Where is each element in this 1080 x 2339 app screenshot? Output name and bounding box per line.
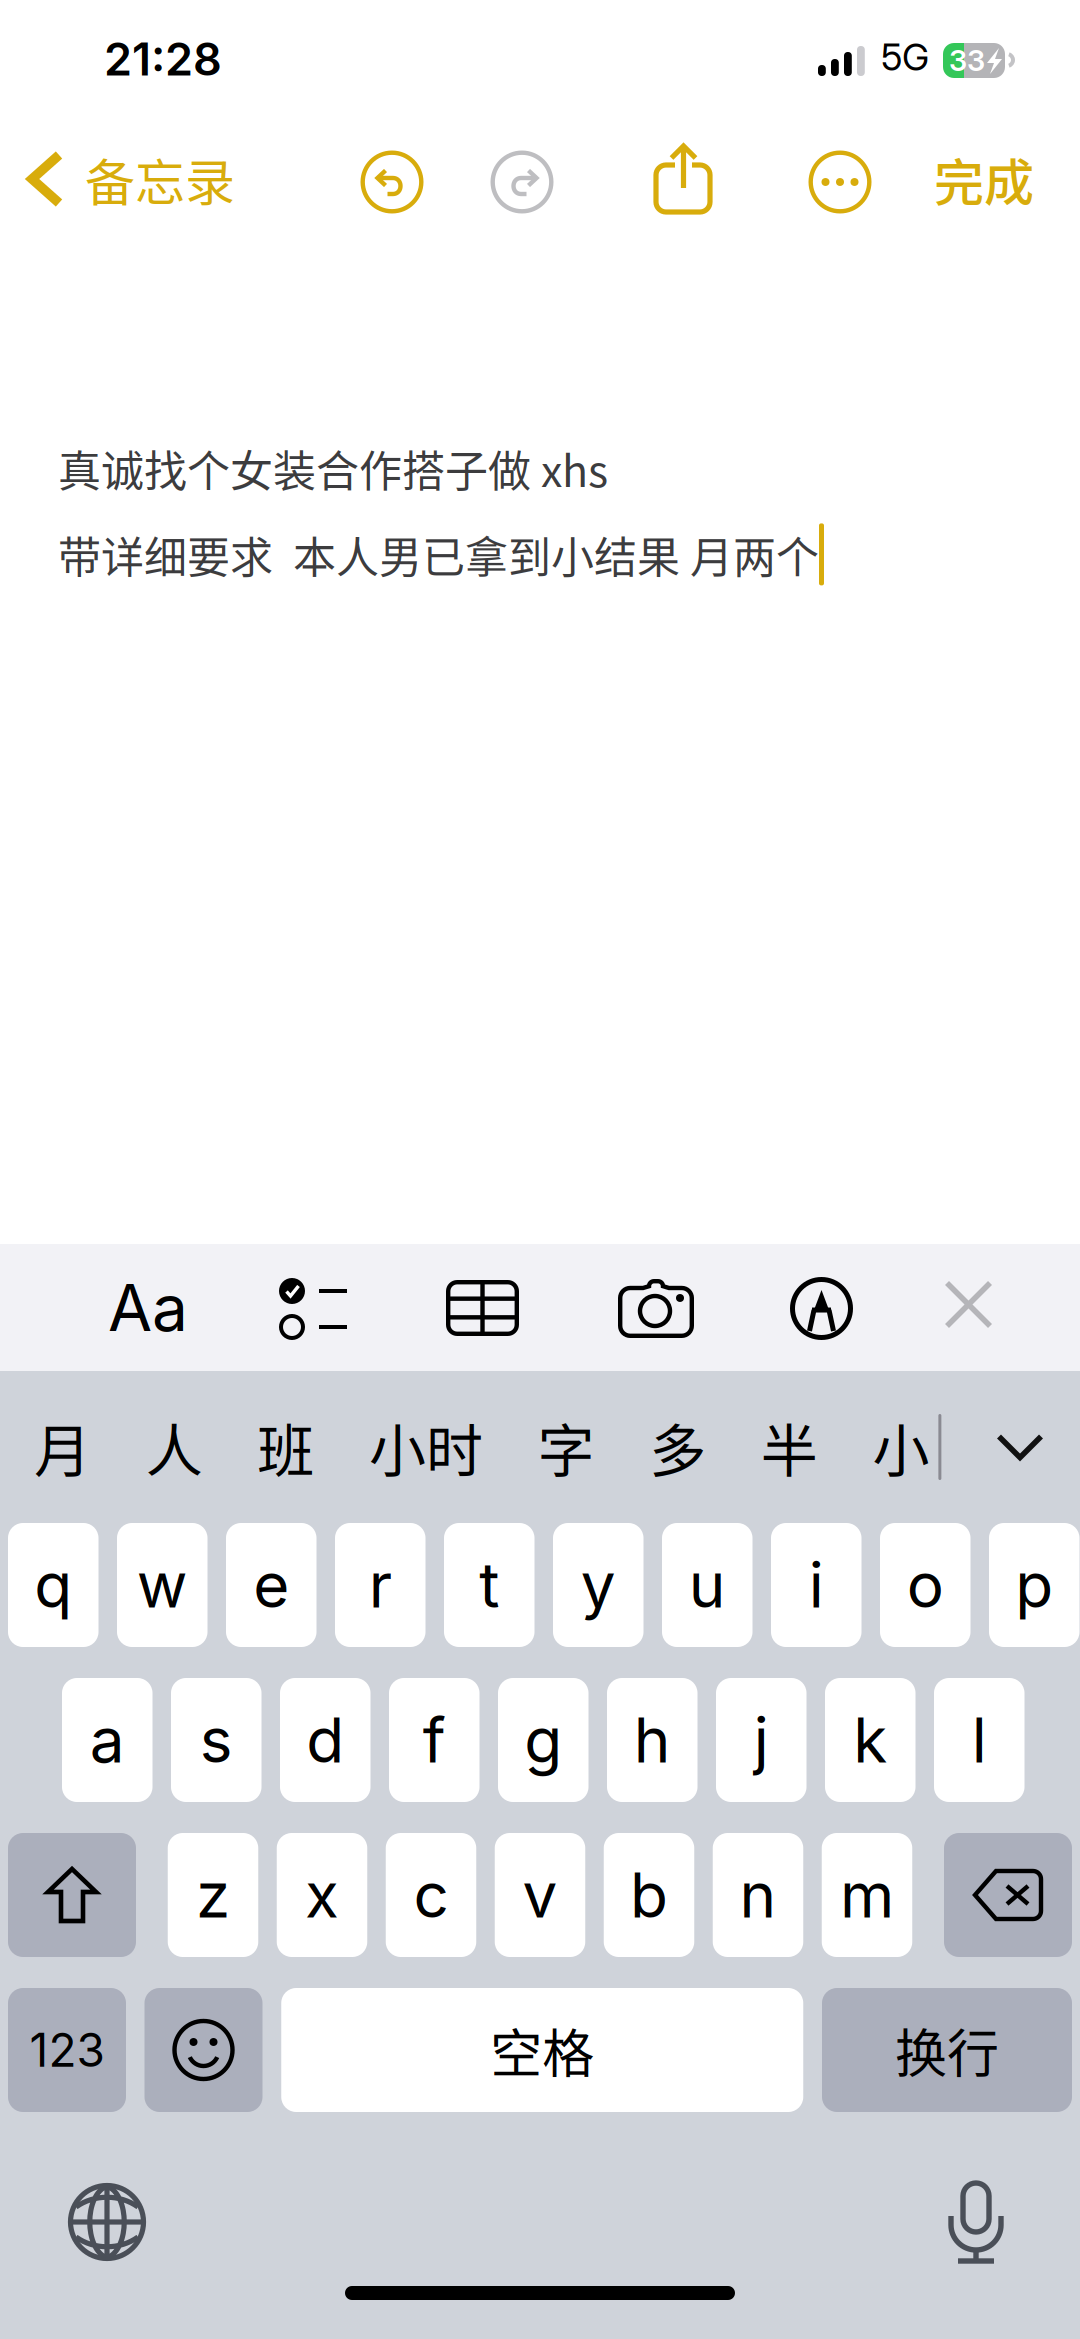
staticText: z (196, 1857, 230, 1932)
button[interactable]: s (171, 1678, 261, 1802)
button[interactable]: v (495, 1833, 585, 1957)
button[interactable]: 小时 (369, 1406, 483, 1488)
button[interactable]: o (880, 1523, 970, 1647)
button[interactable]: 换行 (822, 1988, 1072, 2112)
staticText: 备忘录 (85, 143, 235, 215)
button[interactable]: d (280, 1678, 370, 1802)
staticText: w (137, 1547, 188, 1622)
button[interactable]: 123 (8, 1988, 126, 2112)
staticText: 空格 (490, 2012, 594, 2088)
staticText: i (809, 1547, 824, 1622)
staticText: 字 (537, 1406, 594, 1488)
button[interactable]: Share (654, 143, 712, 213)
button[interactable]: i (771, 1523, 861, 1647)
staticText: 真诚找个女装合作搭子做 xhs (58, 437, 608, 499)
staticText: 人 (146, 1406, 203, 1488)
staticText: 换行 (895, 2012, 999, 2088)
staticText: 班 (257, 1406, 314, 1488)
staticText: o (907, 1547, 944, 1622)
button[interactable]: Camera (606, 1267, 706, 1350)
button[interactable]: a (62, 1678, 152, 1802)
staticText: e (253, 1547, 289, 1622)
staticText: 完成 (934, 143, 1034, 215)
button[interactable]: More candidates (996, 1432, 1044, 1461)
button[interactable]: u (662, 1523, 752, 1647)
button[interactable]: Markup (778, 1265, 865, 1352)
staticText: q (34, 1547, 72, 1622)
staticText: b (630, 1857, 668, 1932)
staticText: 带详细要求 本人男已拿到小结果 月两个 (58, 523, 819, 586)
button[interactable]: Emoji (144, 1988, 262, 2112)
staticText: n (739, 1857, 776, 1932)
staticText: 123 (29, 2022, 104, 2078)
button[interactable]: 字 (537, 1406, 594, 1488)
button[interactable]: z (168, 1833, 258, 1957)
staticText: 多 (649, 1406, 706, 1488)
button[interactable]: 多 (649, 1406, 706, 1488)
staticText: h (634, 1702, 671, 1777)
button[interactable]: 小 (872, 1406, 929, 1488)
button[interactable]: Undo (360, 150, 424, 214)
staticText: 33 (949, 43, 985, 78)
button[interactable]: 人 (146, 1406, 203, 1488)
button[interactable]: Hide keyboard (932, 1268, 1005, 1341)
staticText: Aa (108, 1269, 188, 1346)
button[interactable]: q (8, 1523, 98, 1647)
button[interactable]: j (716, 1678, 806, 1802)
staticText: r (369, 1547, 392, 1622)
button[interactable]: Text format (96, 1257, 200, 1358)
button[interactable]: x (277, 1833, 367, 1957)
button[interactable]: m (822, 1833, 912, 1957)
staticText: f (423, 1702, 446, 1777)
button[interactable]: More options (808, 150, 872, 214)
button[interactable]: r (335, 1523, 425, 1647)
staticText: 月 (34, 1406, 91, 1488)
button[interactable]: l (934, 1678, 1024, 1802)
button[interactable]: h (607, 1678, 697, 1802)
button[interactable]: t (444, 1523, 534, 1647)
button[interactable]: k (825, 1678, 915, 1802)
staticText: d (306, 1702, 344, 1777)
button[interactable]: n (713, 1833, 803, 1957)
button[interactable]: Checklist (267, 1266, 360, 1350)
button[interactable]: 空格 (281, 1988, 803, 2112)
staticText: m (840, 1857, 894, 1932)
button[interactable]: f (389, 1678, 479, 1802)
staticText: a (90, 1702, 125, 1777)
button[interactable]: 备忘录 (0, 140, 262, 232)
staticText: 半 (761, 1406, 818, 1488)
staticText: t (479, 1547, 499, 1622)
button[interactable]: e (226, 1523, 316, 1647)
staticText: 5G (881, 35, 929, 79)
staticText: j (754, 1702, 769, 1777)
button[interactable]: Shift (8, 1833, 136, 1957)
button[interactable]: Table (434, 1268, 531, 1348)
staticText: c (413, 1857, 448, 1932)
button[interactable]: p (989, 1523, 1079, 1647)
button[interactable]: y (553, 1523, 643, 1647)
staticText: 小时 (369, 1406, 483, 1488)
staticText: g (524, 1702, 562, 1777)
staticText: x (305, 1857, 339, 1932)
staticText: l (972, 1702, 987, 1777)
button[interactable]: Redo (490, 150, 554, 214)
button[interactable]: Delete (944, 1833, 1072, 1957)
button[interactable]: g (498, 1678, 588, 1802)
staticText: y (581, 1547, 616, 1622)
button[interactable]: Dictation (948, 2180, 1004, 2264)
staticText: u (689, 1547, 726, 1622)
staticText: 21:28 (104, 32, 222, 86)
button[interactable]: c (386, 1833, 476, 1957)
staticText: 小 (872, 1406, 929, 1488)
staticText: s (200, 1702, 233, 1777)
button[interactable]: 半 (761, 1406, 818, 1488)
button[interactable]: 班 (257, 1406, 314, 1488)
button[interactable]: 月 (34, 1406, 91, 1488)
button[interactable]: Next keyboard (68, 2183, 146, 2261)
button[interactable]: w (117, 1523, 207, 1647)
staticText: v (522, 1857, 557, 1932)
button[interactable]: 完成 (914, 129, 1054, 229)
staticText: p (1015, 1547, 1053, 1622)
staticText: k (853, 1702, 887, 1777)
button[interactable]: b (604, 1833, 694, 1957)
